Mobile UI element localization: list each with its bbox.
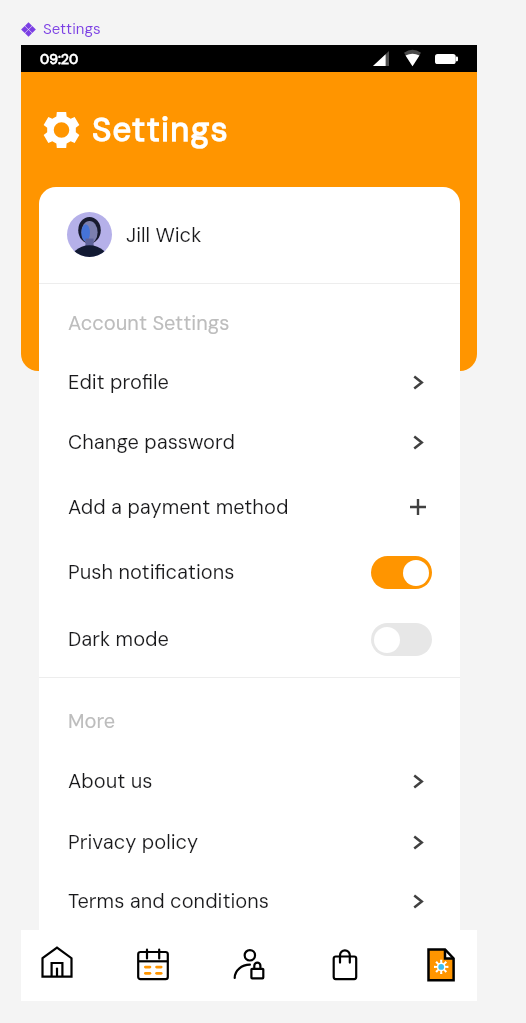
- button[interactable]: Shop: [325, 944, 365, 984]
- staticText: More: [68, 708, 116, 734]
- button[interactable]: Edit profile: [39, 358, 460, 406]
- button[interactable]: Privacy policy: [39, 818, 460, 866]
- staticText: Privacy policy: [68, 829, 199, 855]
- button[interactable]: Home: [37, 944, 77, 984]
- button[interactable]: Jill Wick: [39, 187, 460, 282]
- staticText: Dark mode: [68, 626, 169, 652]
- button[interactable]: About us: [39, 757, 460, 805]
- button[interactable]: Switch off: [371, 623, 432, 656]
- staticText: Change password: [68, 429, 235, 455]
- button[interactable]: Calendar: [133, 944, 173, 984]
- button[interactable]: Add a payment method: [39, 483, 460, 531]
- staticText: 09:20: [40, 50, 79, 68]
- staticText: Edit profile: [68, 369, 169, 395]
- button[interactable]: Switch on: [371, 556, 432, 589]
- staticText: About us: [68, 768, 153, 794]
- button[interactable]: Account: [229, 944, 269, 984]
- button[interactable]: Settings: [421, 944, 461, 984]
- button[interactable]: Change password: [39, 418, 460, 466]
- staticText: Settings: [92, 108, 229, 151]
- staticText: Account Settings: [68, 310, 230, 336]
- staticText: Settings: [43, 19, 101, 39]
- button[interactable]: Dark mode: [39, 615, 460, 663]
- staticText: Push notifications: [68, 559, 235, 585]
- button[interactable]: Terms and conditions: [39, 877, 460, 925]
- staticText: Add a payment method: [68, 494, 289, 520]
- button[interactable]: Push notifications: [39, 548, 460, 596]
- staticText: Terms and conditions: [68, 888, 270, 914]
- staticText: Jill Wick: [126, 222, 202, 248]
